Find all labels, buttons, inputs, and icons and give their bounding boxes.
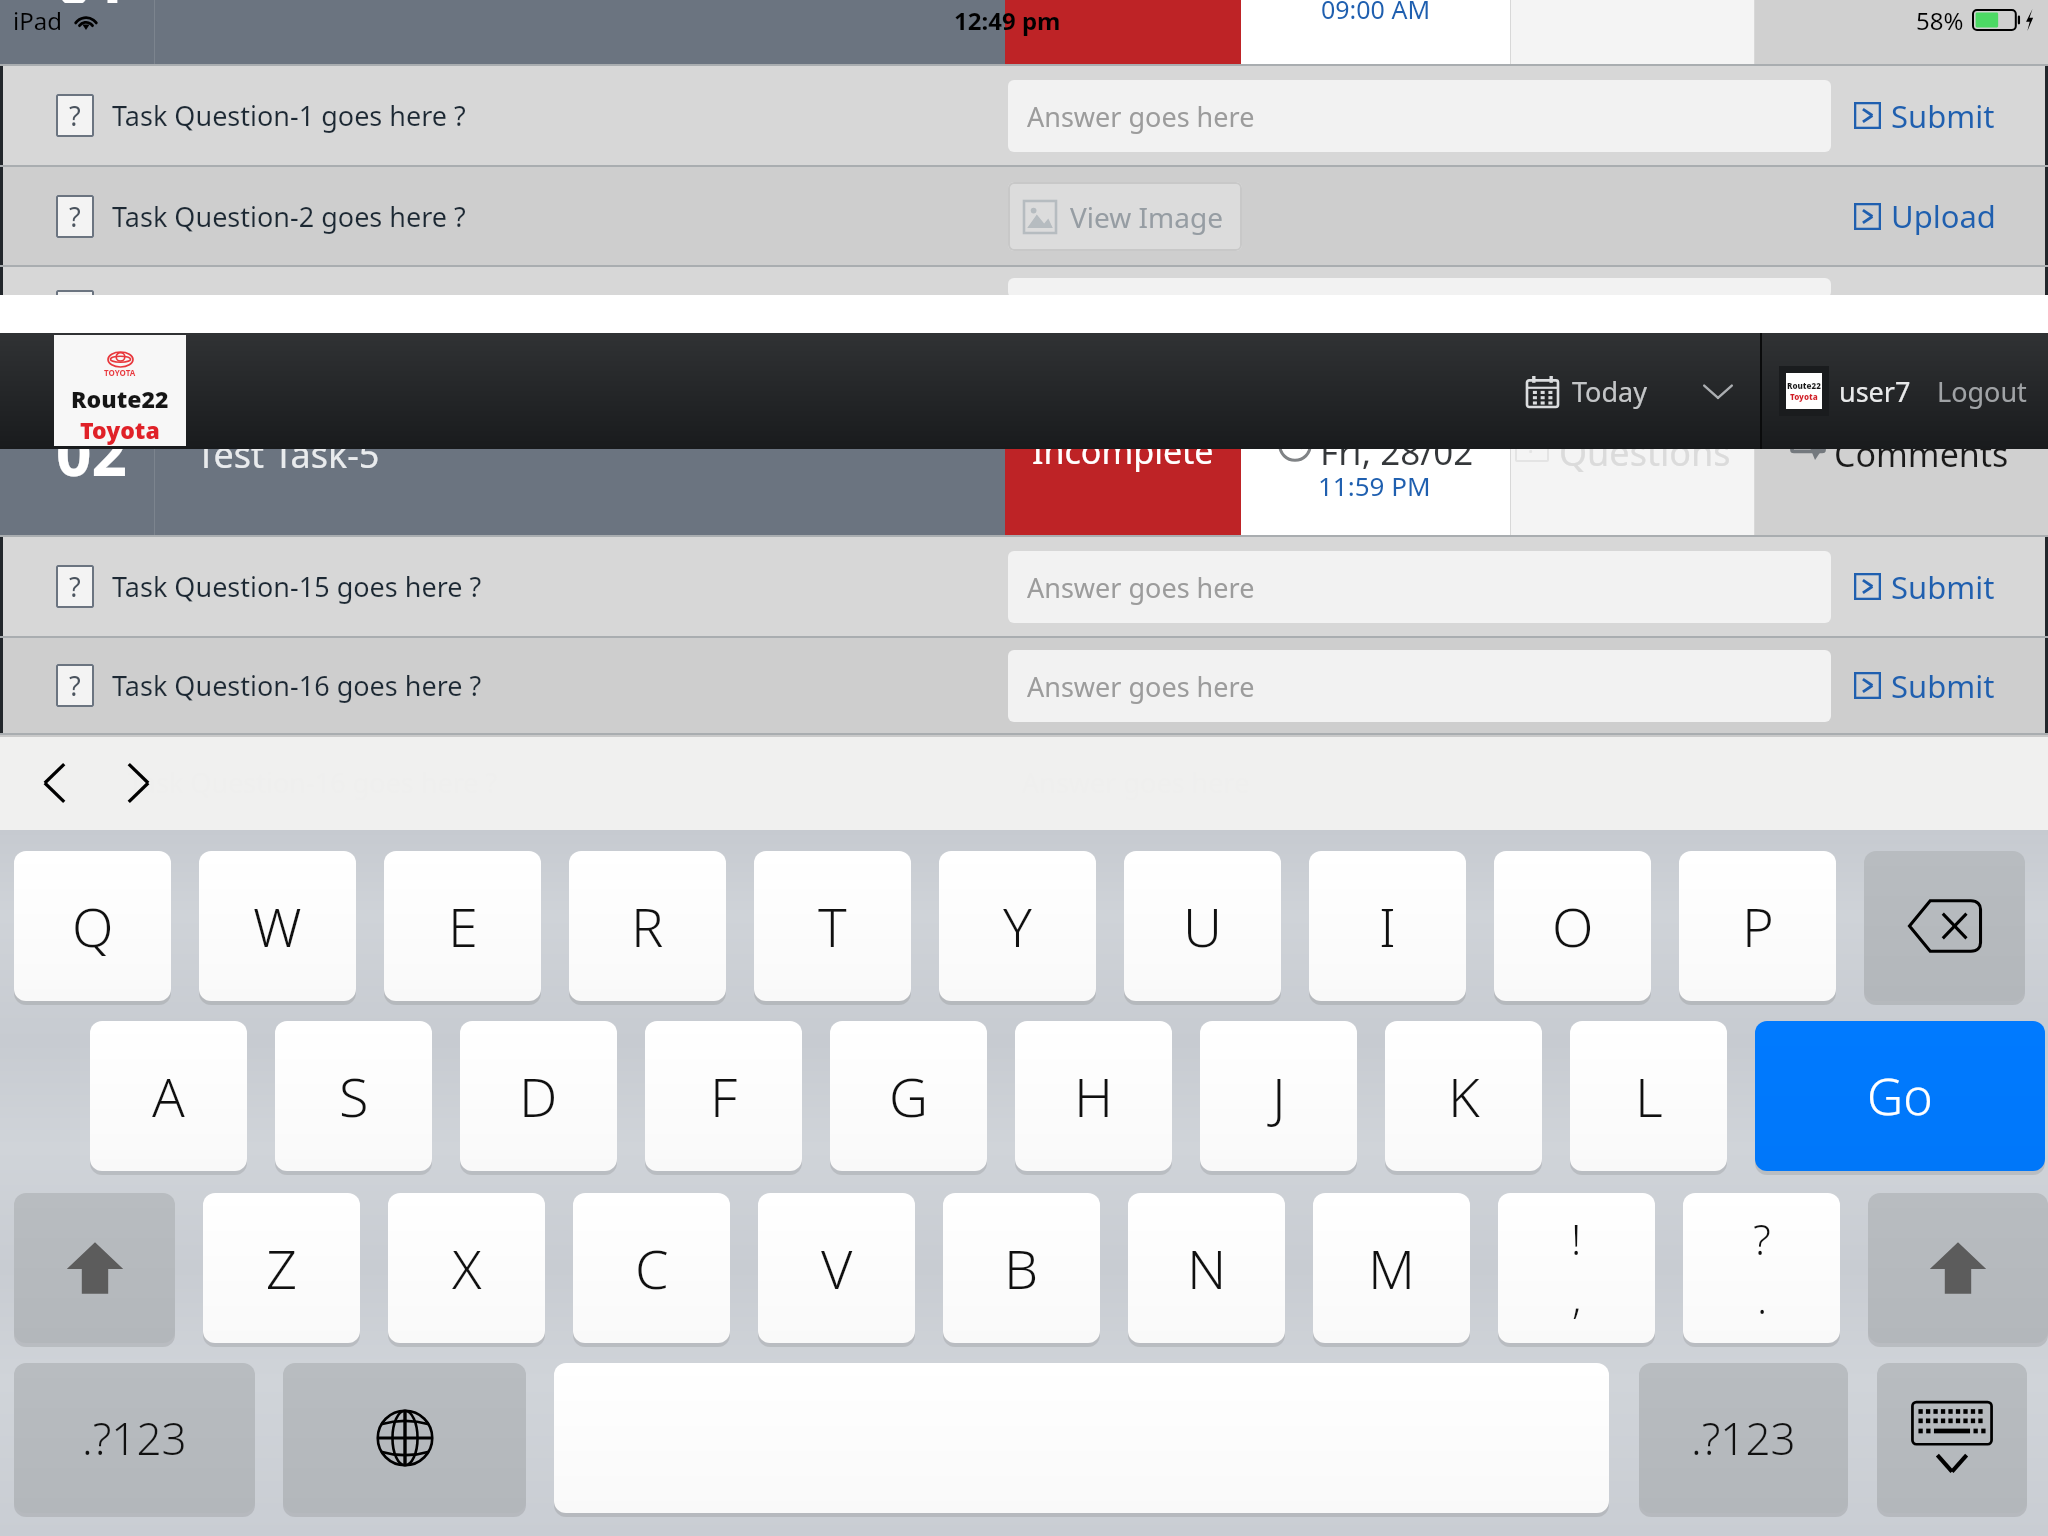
staticText: 58% <box>1916 4 1964 37</box>
button[interactable]: Answer goes here <box>1008 80 1831 152</box>
button[interactable]: T <box>754 851 911 1001</box>
button[interactable]: Y <box>939 851 1096 1001</box>
button[interactable]: F <box>645 1021 802 1171</box>
button[interactable]: D <box>460 1021 617 1171</box>
staticText: Upload <box>1891 195 1996 237</box>
button[interactable]: J <box>1200 1021 1357 1171</box>
staticText: D <box>519 1059 558 1133</box>
button[interactable]: .?123 <box>1639 1363 1848 1513</box>
staticText: ? <box>69 97 81 134</box>
button[interactable]: S <box>275 1021 432 1171</box>
staticText: Route22 <box>1787 380 1821 391</box>
button[interactable]: B <box>943 1193 1100 1343</box>
staticText: F <box>710 1059 738 1133</box>
staticText: L <box>1635 1059 1663 1133</box>
button[interactable]: Submit <box>1854 638 2048 733</box>
staticText: G <box>889 1059 929 1133</box>
staticText: 01 <box>56 0 127 3</box>
button[interactable]: W <box>199 851 356 1001</box>
button[interactable]: I <box>1309 851 1466 1001</box>
button[interactable]: View Image <box>1008 182 1242 251</box>
button[interactable]: ? <box>0 638 1005 733</box>
staticText: 12:49 pm <box>954 4 1061 37</box>
button[interactable]: Shift <box>14 1193 175 1343</box>
staticText: H <box>1074 1059 1114 1133</box>
button[interactable]: Switch language <box>283 1363 526 1513</box>
staticText: E <box>448 889 478 963</box>
staticText: iPad <box>13 4 62 37</box>
staticText: P <box>1742 889 1774 963</box>
button[interactable]: E <box>384 851 541 1001</box>
button[interactable]: A <box>90 1021 247 1171</box>
staticText: Task Question-2 goes here ? <box>112 198 466 235</box>
button[interactable]: K <box>1385 1021 1542 1171</box>
button[interactable]: ? <box>0 66 1005 165</box>
button[interactable]: X <box>388 1193 545 1343</box>
button[interactable]: H <box>1015 1021 1172 1171</box>
button[interactable]: U <box>1124 851 1281 1001</box>
button[interactable]: N <box>1128 1193 1285 1343</box>
staticText: Task Question-16 goes here ? <box>128 764 498 801</box>
staticText: .?123 <box>1691 1408 1796 1468</box>
button[interactable]: L <box>1570 1021 1727 1171</box>
button[interactable]: Backspace <box>1864 851 2025 1001</box>
button[interactable]: Previous field <box>26 755 82 811</box>
button[interactable]: Upload <box>1854 167 2048 265</box>
staticText: ? <box>1753 1210 1771 1267</box>
button[interactable]: O <box>1494 851 1651 1001</box>
button[interactable]: ? <box>1683 1193 1840 1343</box>
button[interactable]: G <box>830 1021 987 1171</box>
button[interactable]: Z <box>203 1193 360 1343</box>
staticText: , <box>1572 1269 1582 1326</box>
button[interactable]: C <box>573 1193 730 1343</box>
staticText: B <box>1004 1231 1039 1305</box>
staticText: View Image <box>1070 198 1223 236</box>
staticText: user7 <box>1839 373 1911 410</box>
staticText: Task Question-15 goes here ? <box>112 568 482 605</box>
staticText: A <box>152 1059 185 1133</box>
button[interactable]: R <box>569 851 726 1001</box>
staticText: R <box>631 889 664 963</box>
staticText: Task Question-16 goes here ? <box>112 667 482 704</box>
button[interactable]: Logout <box>1937 373 2027 410</box>
button[interactable]: ? <box>0 167 1005 265</box>
staticText: Z <box>266 1231 298 1305</box>
staticText: TOYOTA <box>104 367 136 378</box>
button[interactable]: ! <box>1498 1193 1655 1343</box>
staticText: K <box>1448 1059 1480 1133</box>
staticText: Comments <box>1834 431 2009 477</box>
button[interactable]: Today <box>1527 333 1752 449</box>
button[interactable]: Answer goes here <box>1008 650 1831 722</box>
staticText: O <box>1552 889 1594 963</box>
button[interactable]: P <box>1679 851 1836 1001</box>
staticText: 02 <box>56 410 127 494</box>
button[interactable]: Submit <box>1854 537 2048 636</box>
staticText: Fri, 28/02 <box>1320 428 1474 476</box>
staticText: I <box>1379 889 1396 963</box>
button[interactable]: Q <box>14 851 171 1001</box>
button[interactable]: Shift <box>1868 1193 2048 1343</box>
button[interactable]: TOYOTA <box>54 335 186 446</box>
staticText: ? <box>1527 431 1537 460</box>
staticText: Answer goes here <box>1027 98 1255 135</box>
button[interactable]: ? <box>0 537 1005 636</box>
button[interactable]: Go <box>1755 1021 2045 1171</box>
staticText: 09:00 AM <box>1321 0 1431 26</box>
button[interactable]: Answer goes here <box>1008 551 1831 623</box>
staticText: Test Task-5 <box>196 430 380 479</box>
staticText: S <box>339 1059 369 1133</box>
staticText: . <box>1757 1269 1768 1326</box>
button[interactable]: M <box>1313 1193 1470 1343</box>
staticText: C <box>635 1231 669 1305</box>
staticText: Questions <box>1559 428 1731 477</box>
button[interactable]: .?123 <box>14 1363 255 1513</box>
staticText: Toyota <box>80 414 160 445</box>
staticText: W <box>253 889 302 963</box>
button[interactable]: Submit <box>1854 66 2048 165</box>
button[interactable]: Next field <box>110 755 166 811</box>
staticText: Route22 <box>71 383 169 414</box>
staticText: Today <box>1572 373 1647 410</box>
button[interactable]: Hide keyboard <box>1877 1363 2027 1513</box>
button[interactable]: V <box>758 1193 915 1343</box>
